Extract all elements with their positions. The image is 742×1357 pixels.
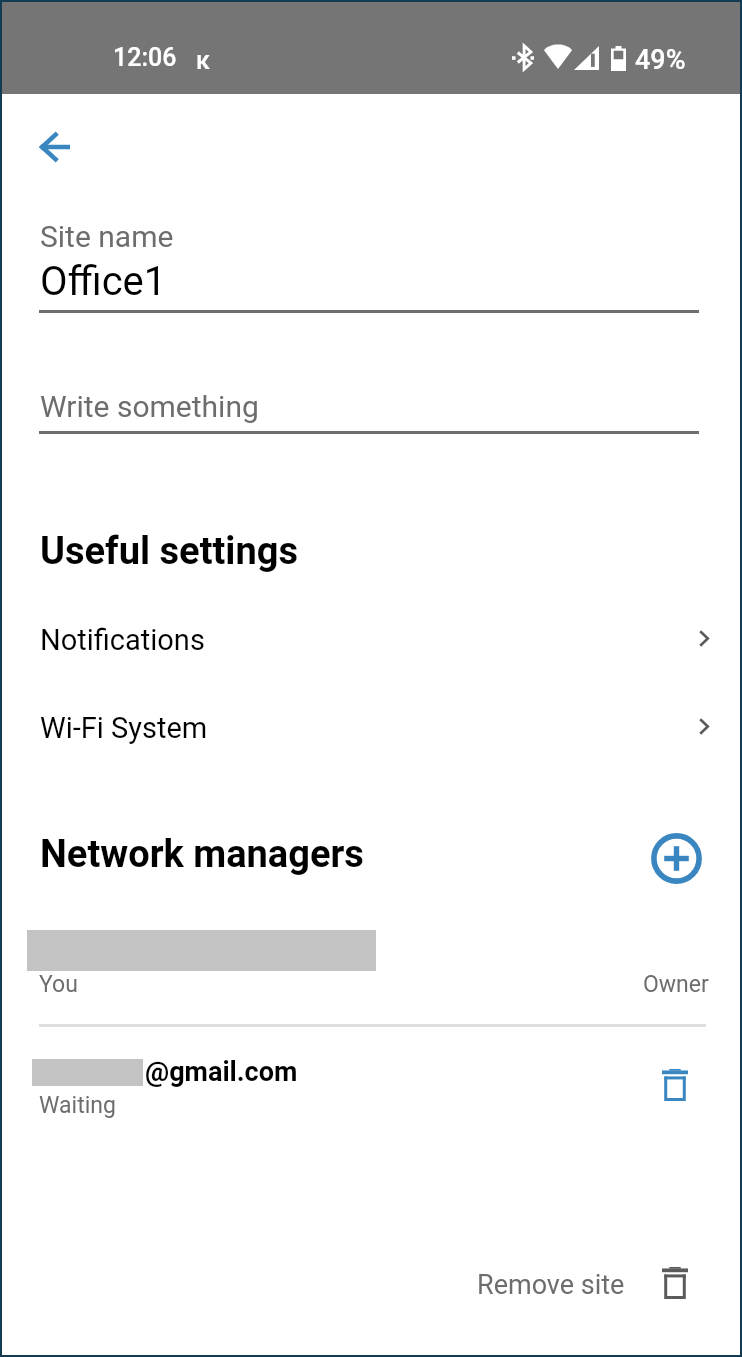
button[interactable]: Back xyxy=(18,125,92,169)
staticText: Remove site xyxy=(477,1269,625,1301)
staticText: Waiting xyxy=(39,1092,116,1119)
staticText: Office1 xyxy=(40,258,167,305)
button[interactable]: Remove network manager xyxy=(646,1053,704,1111)
staticText: Wi-Fi System xyxy=(40,711,208,745)
button[interactable]: Remove site xyxy=(455,1248,715,1322)
button[interactable]: Add network manager xyxy=(648,830,705,887)
staticText: 49% xyxy=(635,44,686,76)
staticText: Network managers xyxy=(40,832,364,877)
button[interactable]: Wi-Fi System xyxy=(0,689,742,757)
staticText: Notifications xyxy=(40,623,205,657)
staticText: к xyxy=(196,46,210,75)
staticText: Owner xyxy=(643,971,709,998)
button[interactable]: Notifications xyxy=(0,600,742,668)
staticText: You xyxy=(39,971,78,998)
staticText: Site name xyxy=(40,219,174,254)
staticText: 12:06 xyxy=(113,43,177,72)
staticText: @gmail.com xyxy=(145,1056,298,1088)
staticText: Write something xyxy=(40,389,259,424)
staticText: Useful settings xyxy=(40,529,298,574)
